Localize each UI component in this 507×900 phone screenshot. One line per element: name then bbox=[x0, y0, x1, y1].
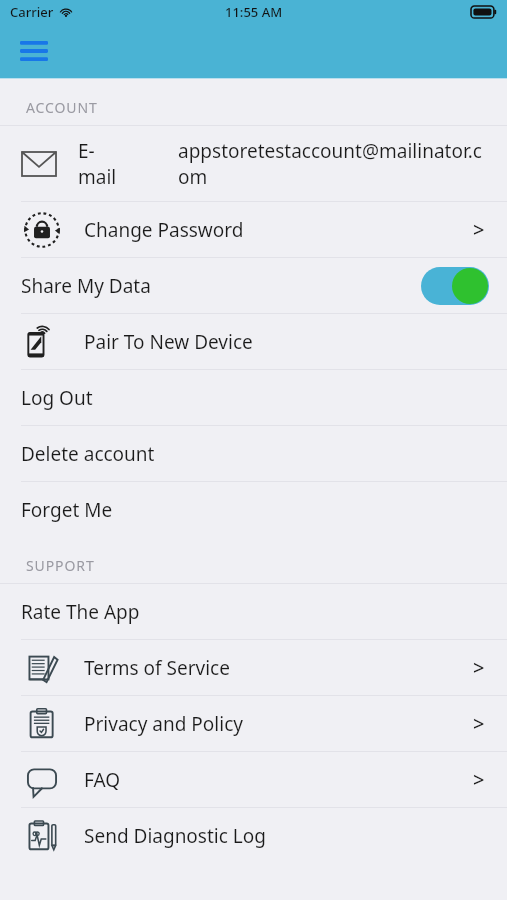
button[interactable]: Log Out bbox=[0, 370, 507, 425]
button[interactable]: Delete account bbox=[0, 426, 507, 481]
staticText: Delete account bbox=[21, 441, 155, 467]
button[interactable]: E- mail bbox=[0, 126, 507, 201]
button[interactable]: Pair To New Device bbox=[0, 314, 507, 369]
button[interactable]: Terms of Service bbox=[0, 640, 507, 695]
staticText: Send Diagnostic Log bbox=[84, 823, 507, 849]
staticText: appstoretestaccount@mailinator.com bbox=[178, 138, 487, 190]
staticText: Share My Data bbox=[21, 273, 421, 299]
staticText: Carrier bbox=[10, 3, 54, 21]
button[interactable]: Rate The App bbox=[0, 584, 507, 639]
staticText: Change Password bbox=[84, 217, 473, 243]
staticText: > bbox=[473, 710, 485, 737]
staticText: Terms of Service bbox=[84, 655, 473, 681]
button[interactable]: FAQ bbox=[0, 752, 507, 807]
button[interactable]: Menu bbox=[16, 33, 52, 69]
staticText: ACCOUNT bbox=[26, 98, 98, 117]
button[interactable]: Share My Data bbox=[0, 258, 507, 313]
staticText: Rate The App bbox=[21, 599, 140, 625]
staticText: 11:55 AM bbox=[225, 3, 283, 21]
staticText: E- mail bbox=[78, 138, 178, 190]
button[interactable]: Change Password bbox=[0, 202, 507, 257]
staticText: Pair To New Device bbox=[84, 329, 507, 355]
button[interactable]: Send Diagnostic Log bbox=[0, 808, 507, 863]
staticText: Log Out bbox=[21, 385, 93, 411]
button[interactable]: Privacy and Policy bbox=[0, 696, 507, 751]
staticText: Forget Me bbox=[21, 497, 113, 523]
staticText: > bbox=[473, 654, 485, 681]
button[interactable]: Forget Me bbox=[0, 482, 507, 537]
staticText: > bbox=[473, 216, 485, 243]
staticText: > bbox=[473, 766, 485, 793]
staticText: Privacy and Policy bbox=[84, 711, 473, 737]
staticText: SUPPORT bbox=[26, 556, 95, 575]
staticText: FAQ bbox=[84, 767, 473, 793]
